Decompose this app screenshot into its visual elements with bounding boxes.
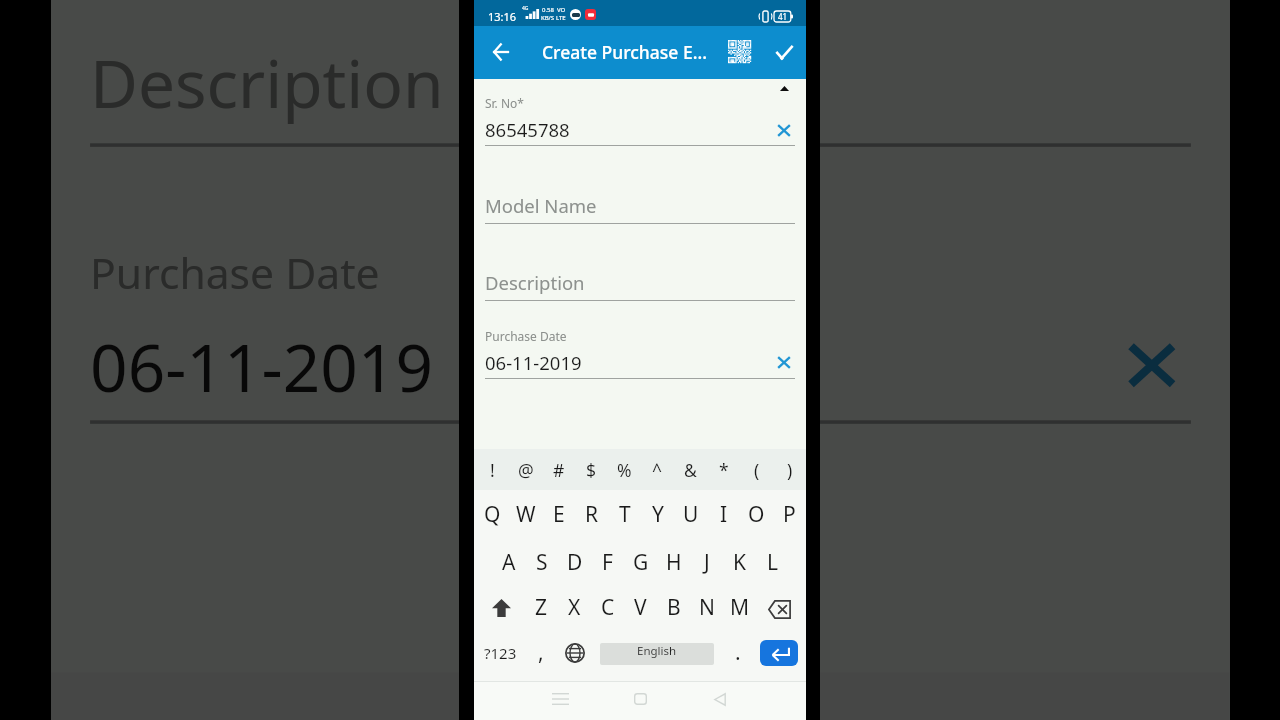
button[interactable]: Collapse bbox=[774, 79, 795, 97]
button[interactable]: $ bbox=[575, 447, 608, 493]
button[interactable]: * bbox=[707, 447, 740, 493]
staticText: Y bbox=[652, 500, 664, 529]
button[interactable]: % bbox=[608, 447, 641, 493]
button[interactable]: S bbox=[525, 539, 558, 585]
button[interactable]: Save bbox=[762, 29, 807, 74]
staticText: $ bbox=[449, 704, 488, 720]
staticText: ) bbox=[787, 458, 793, 482]
button[interactable]: E bbox=[542, 491, 575, 537]
button[interactable]: V bbox=[624, 584, 657, 630]
button[interactable]: P bbox=[773, 491, 806, 537]
button[interactable]: D bbox=[558, 539, 591, 585]
button[interactable]: Backspace bbox=[762, 586, 796, 632]
button[interactable]: $ bbox=[410, 665, 527, 720]
button[interactable]: & bbox=[674, 447, 707, 493]
button[interactable]: English bbox=[600, 643, 714, 665]
button[interactable]: Recent apps bbox=[538, 682, 582, 716]
button[interactable]: Enter bbox=[760, 640, 798, 666]
staticText: $ bbox=[586, 458, 597, 482]
staticText: , bbox=[538, 638, 544, 667]
staticText: % bbox=[617, 458, 632, 482]
staticText: I bbox=[720, 500, 728, 529]
button[interactable]: X bbox=[558, 584, 591, 630]
button[interactable]: Shift bbox=[484, 585, 518, 631]
button[interactable]: Change language bbox=[559, 637, 591, 669]
button[interactable]: ^ bbox=[641, 447, 674, 493]
button[interactable]: . bbox=[723, 637, 753, 667]
button[interactable]: @ bbox=[509, 447, 542, 493]
button[interactable]: ! bbox=[476, 447, 509, 493]
staticText: T bbox=[619, 500, 631, 529]
staticText: 0.58 bbox=[542, 6, 554, 14]
staticText: B bbox=[667, 593, 681, 622]
button[interactable]: I bbox=[707, 491, 740, 537]
staticText: . bbox=[735, 638, 741, 667]
staticText: & bbox=[684, 458, 697, 482]
button[interactable]: ?123 bbox=[476, 638, 524, 668]
staticText: U bbox=[683, 500, 699, 529]
button[interactable]: K bbox=[723, 539, 756, 585]
button[interactable]: F bbox=[591, 539, 624, 585]
button[interactable]: O bbox=[740, 491, 773, 537]
staticText: L bbox=[767, 548, 779, 577]
button[interactable]: W bbox=[509, 491, 542, 537]
button[interactable]: G bbox=[624, 539, 657, 585]
button[interactable]: # bbox=[542, 447, 575, 493]
button[interactable]: T bbox=[608, 491, 641, 537]
button[interactable]: & bbox=[761, 665, 878, 720]
button[interactable]: Y bbox=[641, 491, 674, 537]
button[interactable]: % bbox=[527, 665, 644, 720]
staticText: 41 bbox=[778, 11, 788, 22]
button[interactable]: C bbox=[591, 584, 624, 630]
button[interactable]: Clear bbox=[772, 119, 796, 143]
button[interactable]: ^ bbox=[644, 665, 761, 720]
staticText: 4G bbox=[522, 5, 529, 12]
staticText: Description bbox=[90, 37, 445, 126]
button[interactable]: Clear bbox=[1109, 324, 1194, 410]
button[interactable]: Z bbox=[525, 584, 558, 630]
button[interactable]: ( bbox=[740, 447, 773, 493]
button[interactable]: N bbox=[690, 584, 723, 630]
staticText: @ bbox=[518, 458, 534, 482]
staticText: ^ bbox=[652, 458, 663, 482]
staticText: Purchase Date bbox=[485, 328, 567, 344]
button[interactable]: R bbox=[575, 491, 608, 537]
staticText: W bbox=[516, 500, 536, 529]
button[interactable]: L bbox=[756, 539, 789, 585]
button[interactable]: J bbox=[690, 539, 723, 585]
button[interactable]: Back bbox=[478, 29, 523, 74]
staticText: # bbox=[553, 458, 565, 482]
button[interactable]: ) bbox=[773, 447, 806, 493]
button[interactable]: U bbox=[674, 491, 707, 537]
button[interactable]: B bbox=[657, 584, 690, 630]
staticText: Purchase Date bbox=[90, 243, 381, 299]
staticText: % bbox=[559, 704, 612, 720]
staticText: G bbox=[633, 548, 649, 577]
staticText: H bbox=[666, 548, 682, 577]
button[interactable]: Home bbox=[618, 682, 662, 716]
button[interactable]: M bbox=[723, 584, 756, 630]
staticText: 06-11-2019 bbox=[485, 350, 582, 375]
button[interactable]: H bbox=[657, 539, 690, 585]
staticText: X bbox=[568, 593, 581, 622]
button[interactable]: Back bbox=[698, 682, 742, 716]
staticText: VO bbox=[557, 6, 566, 14]
button[interactable]: Q bbox=[476, 491, 509, 537]
button[interactable]: , bbox=[526, 637, 556, 667]
button[interactable]: Clear bbox=[772, 351, 796, 375]
button[interactable]: Scan QR code bbox=[717, 29, 762, 74]
staticText: A bbox=[502, 548, 516, 577]
button[interactable]: A bbox=[492, 539, 525, 585]
staticText: K bbox=[733, 548, 746, 577]
staticText: Model Name bbox=[485, 193, 597, 218]
staticText: Q bbox=[484, 500, 501, 529]
